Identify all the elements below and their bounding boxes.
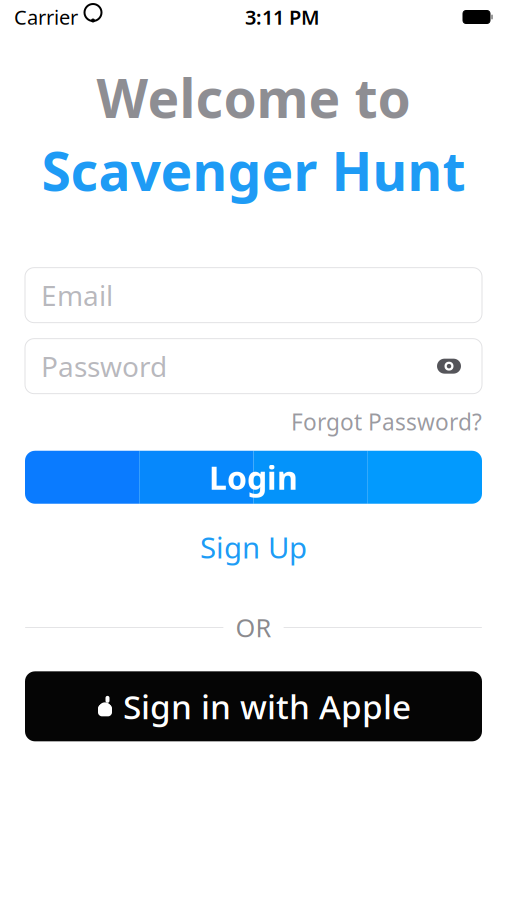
staticText: OR bbox=[235, 611, 271, 644]
button[interactable]: Sign Up bbox=[25, 518, 482, 577]
button[interactable]: Show password bbox=[432, 349, 466, 383]
staticText: Carrier bbox=[14, 4, 78, 30]
staticText: Sign in with Apple bbox=[123, 684, 411, 728]
staticText: Password bbox=[41, 348, 167, 385]
staticText: 3:11 PM bbox=[245, 4, 320, 30]
staticText: Scavenger Hunt bbox=[41, 135, 465, 206]
button[interactable]: Login bbox=[25, 451, 482, 504]
staticText: Email bbox=[41, 277, 113, 314]
staticText: Welcome to bbox=[96, 62, 410, 133]
staticText: Forgot Password? bbox=[291, 407, 482, 437]
button[interactable]: Sign in with Apple bbox=[25, 671, 482, 741]
button[interactable]: Forgot Password? bbox=[291, 401, 482, 443]
staticText: Sign Up bbox=[200, 528, 307, 567]
staticText: Login bbox=[209, 456, 298, 498]
